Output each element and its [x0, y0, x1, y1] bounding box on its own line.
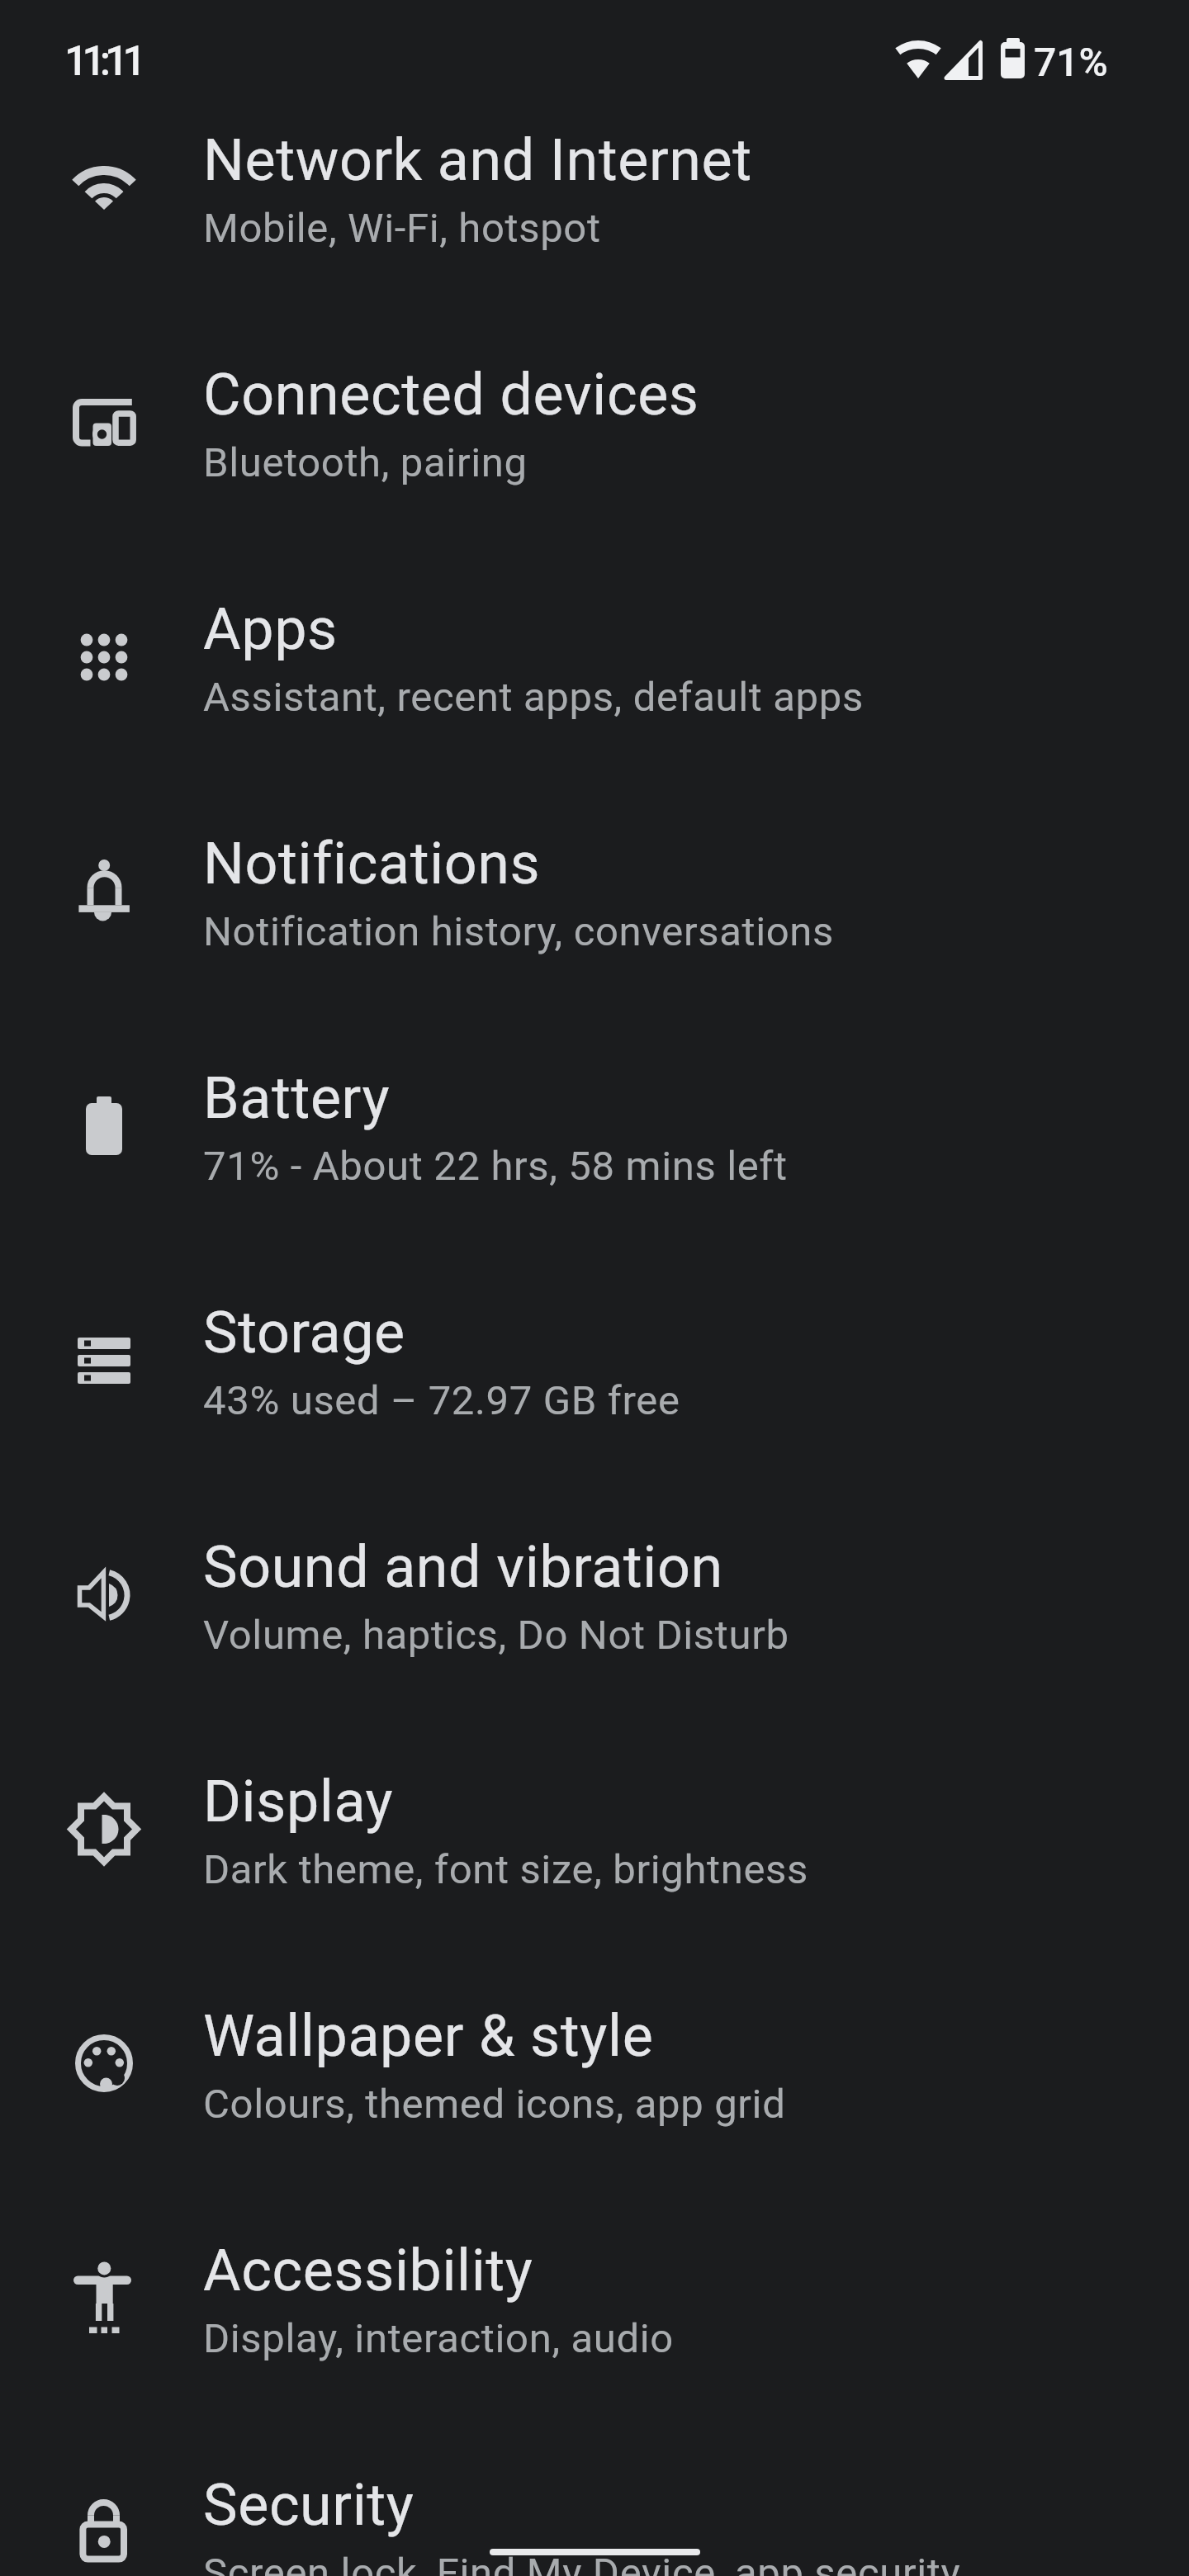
button[interactable]: Sound and vibration [0, 1480, 1189, 1714]
staticText: Storage [203, 1299, 405, 1366]
button[interactable]: Connected devices [0, 307, 1189, 542]
button[interactable]: Wallpaper & style [0, 1949, 1189, 2183]
button[interactable]: Display [0, 1714, 1189, 1949]
staticText: Network and Internet [203, 126, 752, 194]
staticText: Dark theme, font size, brightness [203, 1846, 808, 1893]
staticText: Display, interaction, audio [203, 2315, 674, 2362]
staticText: Assistant, recent apps, default apps [203, 674, 864, 721]
staticText: Battery [203, 1064, 391, 1132]
staticText: Volume, haptics, Do Not Disturb [203, 1612, 789, 1659]
staticText: 11:11 [64, 37, 140, 86]
button[interactable]: Storage [0, 1245, 1189, 1480]
staticText: Bluetooth, pairing [203, 439, 528, 486]
staticText: Connected devices [203, 361, 699, 429]
staticText: Notifications [203, 830, 541, 897]
staticText: Apps [203, 595, 338, 663]
staticText: Display [203, 1768, 394, 1835]
staticText: Security [203, 2471, 414, 2539]
button[interactable]: Security [0, 2417, 1189, 2576]
staticText: 71% - About 22 hrs, 58 mins left [203, 1143, 788, 1190]
staticText: Wallpaper & style [203, 2002, 654, 2070]
button[interactable]: Battery [0, 1011, 1189, 1245]
staticText: 43% used – 72.97 GB free [203, 1377, 680, 1424]
button[interactable]: Apps [0, 542, 1189, 776]
staticText: 71% [1034, 39, 1108, 85]
staticText: Colours, themed icons, app grid [203, 2081, 786, 2128]
staticText: Accessibility [203, 2237, 533, 2304]
staticText: Screen lock, Find My Device, app securit… [203, 2550, 961, 2576]
button[interactable]: Accessibility [0, 2183, 1189, 2417]
button[interactable]: Network and Internet [0, 73, 1189, 307]
staticText: Notification history, conversations [203, 908, 834, 955]
staticText: Sound and vibration [203, 1533, 723, 1601]
button[interactable]: Notifications [0, 776, 1189, 1011]
staticText: Mobile, Wi-Fi, hotspot [203, 205, 601, 252]
